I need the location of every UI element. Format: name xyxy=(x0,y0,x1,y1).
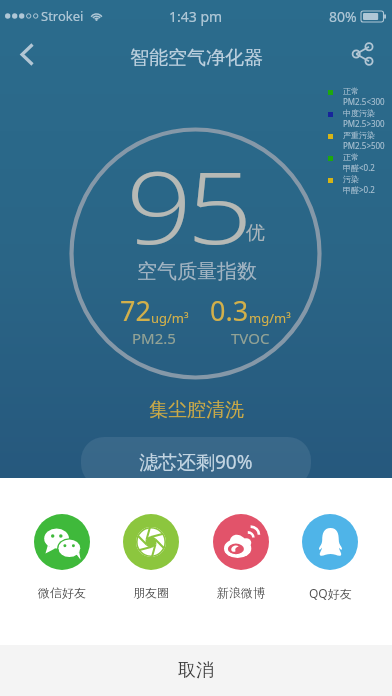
staticText: TVOC xyxy=(231,328,270,348)
staticText: 滤芯还剩90% xyxy=(139,449,253,475)
button[interactable]: QQ好友 xyxy=(302,514,358,601)
staticText: 空气质量指数 xyxy=(137,259,257,284)
staticText: 正常 xyxy=(343,152,359,162)
staticText: 1:43 pm xyxy=(169,7,223,26)
staticText: 甲醛<0.2 xyxy=(343,162,375,173)
staticText: 优 xyxy=(246,221,265,245)
staticText: 正常 xyxy=(343,86,359,96)
staticText: 微信好友 xyxy=(38,585,86,600)
staticText: QQ好友 xyxy=(309,585,352,601)
button[interactable]: 朋友圈 xyxy=(123,514,179,600)
button[interactable]: Share xyxy=(340,32,384,76)
button[interactable]: 集尘腔清洗 xyxy=(145,394,248,426)
staticText: 中度污染 xyxy=(343,108,375,118)
button[interactable]: 新浪微博 xyxy=(213,514,269,600)
staticText: 新浪微博 xyxy=(217,585,265,600)
staticText: ug/m³ xyxy=(151,309,189,327)
staticText: 污染 xyxy=(343,174,359,184)
staticText: 智能空气净化器 xyxy=(130,46,263,70)
staticText: 0.3 xyxy=(210,292,249,329)
staticText: PM2.5>500 xyxy=(343,140,385,151)
staticText: 80% xyxy=(329,7,357,26)
staticText: PM2.5<300 xyxy=(343,96,385,107)
staticText: 取消 xyxy=(178,659,214,682)
staticText: 朋友圈 xyxy=(133,585,169,600)
staticText: 严重污染 xyxy=(343,130,375,140)
staticText: mg/m³ xyxy=(249,309,291,327)
button[interactable]: 取消 xyxy=(0,645,392,696)
staticText: Strokei xyxy=(41,7,84,25)
button[interactable]: 微信好友 xyxy=(34,514,90,600)
button[interactable]: 滤芯还剩90% xyxy=(81,437,311,487)
staticText: 95 xyxy=(126,137,248,273)
staticText: 72 xyxy=(120,292,151,329)
staticText: 甲醛>0.2 xyxy=(343,184,375,195)
staticText: PM2.5>300 xyxy=(343,118,385,129)
staticText: PM2.5 xyxy=(132,328,176,348)
staticText: 集尘腔清洗 xyxy=(149,398,244,422)
button[interactable]: Back xyxy=(6,32,48,76)
